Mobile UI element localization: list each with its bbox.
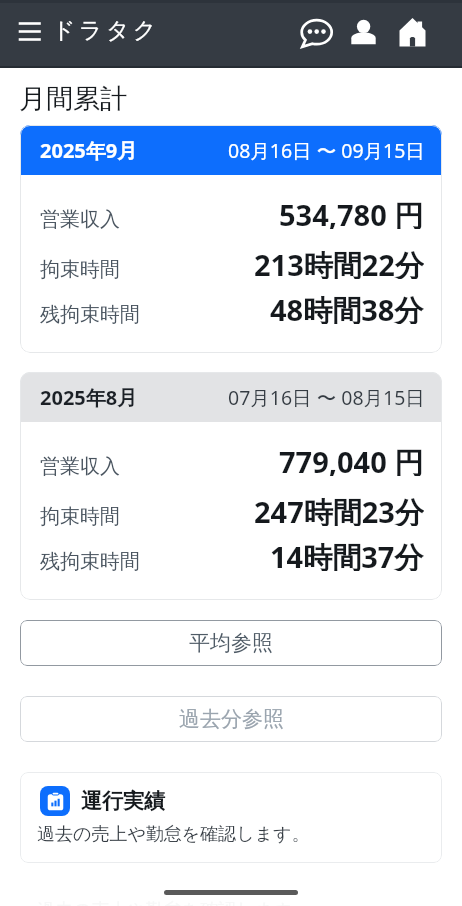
staticText: 月間累計 [19, 82, 127, 116]
button[interactable]: Home [390, 12, 434, 56]
staticText: 2025年8月 [40, 384, 138, 411]
staticText: 534,780 円 [279, 195, 424, 229]
button[interactable]: Account [342, 12, 384, 54]
staticText: 拘束時間 [40, 257, 120, 282]
staticText: 過去分参照 [179, 706, 284, 732]
staticText: 運行実績 [81, 788, 165, 814]
staticText: 残拘束時間 [40, 302, 140, 327]
staticText: ドラタク [52, 16, 160, 45]
staticText: 213時間22分 [254, 245, 424, 279]
staticText: 拘束時間 [40, 504, 120, 529]
staticText: 08月16日 〜 09月15日 [228, 137, 425, 164]
button[interactable]: 2025年8月 [20, 372, 442, 600]
button[interactable]: 平均参照 [20, 620, 442, 666]
staticText: 48時間38分 [270, 290, 424, 324]
staticText: 残拘束時間 [40, 549, 140, 574]
button[interactable]: Menu [10, 12, 50, 52]
button[interactable]: 2025年9月 [20, 125, 442, 353]
button[interactable]: 運行実績 [20, 772, 442, 863]
staticText: 営業収入 [40, 454, 120, 479]
staticText: 247時間23分 [254, 492, 424, 526]
staticText: 07月16日 〜 08月15日 [228, 384, 425, 411]
button[interactable]: Chat [301, 12, 345, 56]
staticText: 平均参照 [189, 630, 273, 656]
staticText: 14時間37分 [270, 537, 424, 571]
staticText: 営業収入 [40, 207, 120, 232]
staticText: 2025年9月 [40, 137, 138, 164]
button[interactable]: 過去分参照 [20, 696, 442, 742]
staticText: 779,040 円 [279, 442, 424, 476]
staticText: 過去の売上や勤怠を確認します。 [37, 823, 310, 846]
